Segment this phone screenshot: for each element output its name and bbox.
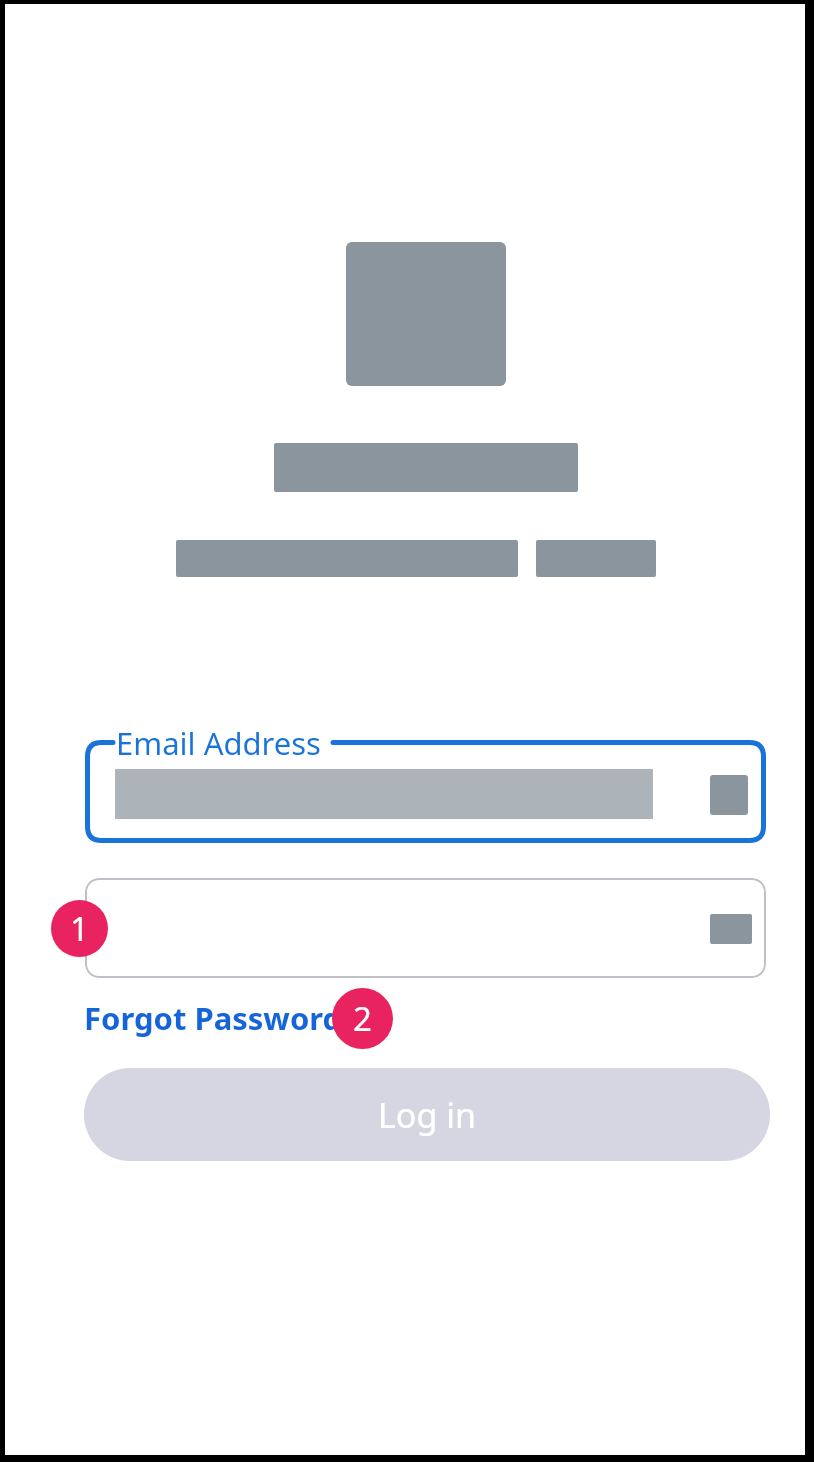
button[interactable]: Email Address — [85, 740, 766, 843]
staticText: Log in — [378, 1092, 476, 1138]
button[interactable]: Show password — [85, 878, 766, 978]
button[interactable]: Log in — [84, 1068, 770, 1161]
staticText: Email Address — [116, 722, 321, 764]
staticText: 2 — [353, 996, 372, 1041]
other: Clear email — [710, 775, 748, 815]
staticText: Forgot Password? — [84, 997, 357, 1039]
other: Show password — [710, 914, 752, 944]
staticText: 1 — [70, 906, 89, 951]
button[interactable]: Forgot Password? — [84, 997, 357, 1039]
